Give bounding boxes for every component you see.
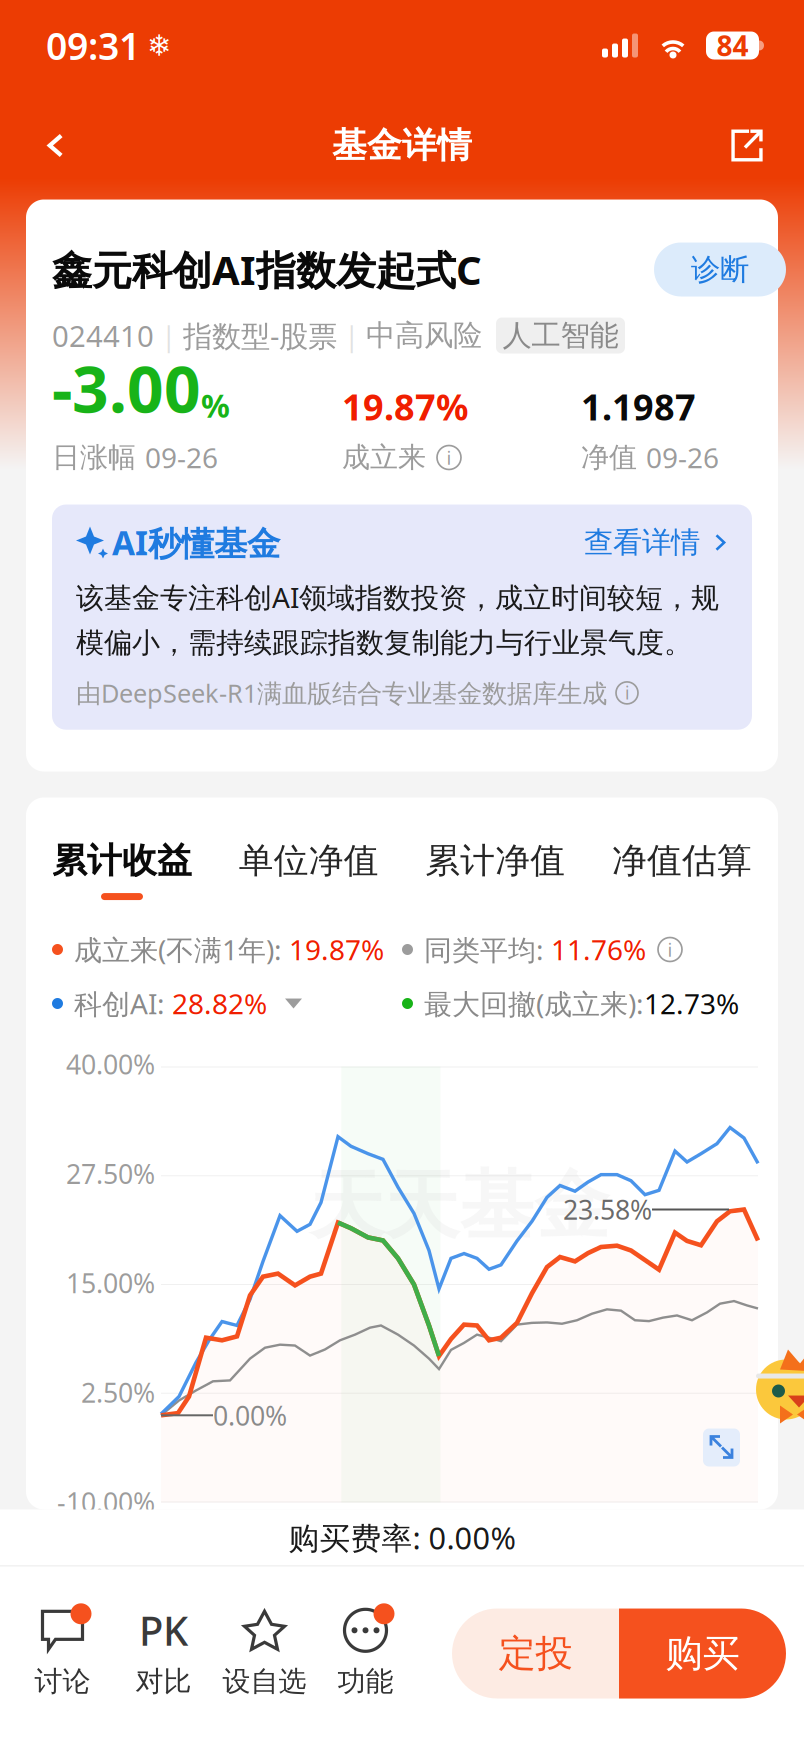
staticText: 23.58% bbox=[563, 1192, 652, 1227]
staticText: 购买费率: 0.00% bbox=[288, 1517, 515, 1558]
button[interactable]: 分享 bbox=[694, 110, 764, 180]
button[interactable]: 净值估算 bbox=[612, 839, 752, 895]
staticText: 净值 bbox=[581, 440, 637, 475]
staticText: 鑫元科创AI指数发起式C bbox=[52, 243, 482, 296]
staticText: 功能 bbox=[337, 1664, 393, 1699]
button[interactable]: 功能 bbox=[315, 1597, 416, 1709]
staticText: 由DeepSeek-R1满血版结合专业基金数据库生成 bbox=[76, 676, 607, 710]
staticText: AI秒懂基金 bbox=[112, 520, 280, 565]
button[interactable]: 购买 bbox=[619, 1608, 786, 1698]
staticText: 定投 bbox=[498, 1631, 572, 1676]
staticText: 11.76% bbox=[551, 931, 646, 968]
staticText: 人工智能 bbox=[502, 317, 618, 353]
button[interactable]: 讨论 bbox=[12, 1597, 113, 1709]
staticText: i bbox=[446, 445, 451, 470]
staticText: 19.87% bbox=[342, 383, 468, 430]
staticText: 查看详情 bbox=[584, 524, 700, 560]
staticText: 40.00% bbox=[66, 1046, 155, 1082]
button[interactable]: PK bbox=[113, 1597, 214, 1709]
button[interactable]: 设自选 bbox=[214, 1597, 315, 1709]
staticText: i bbox=[625, 681, 629, 704]
staticText: 同类平均: bbox=[424, 931, 551, 968]
button[interactable]: 诊断 bbox=[654, 242, 786, 296]
staticText: 024410 bbox=[52, 316, 154, 355]
staticText: 累计净值 bbox=[425, 839, 565, 882]
button[interactable]: 定投 bbox=[452, 1608, 619, 1698]
staticText: 指数型-股票 bbox=[183, 316, 337, 355]
staticText: | bbox=[344, 317, 359, 354]
staticText: 诊断 bbox=[691, 251, 749, 287]
staticText: 购买 bbox=[665, 1631, 739, 1676]
staticText: % bbox=[201, 384, 230, 426]
staticText: PK bbox=[139, 1604, 188, 1657]
staticText: 09:31 bbox=[46, 21, 140, 70]
staticText: 该基金专注科创AI领域指数投资，成立时间较短，规 bbox=[76, 578, 719, 616]
staticText: 84 bbox=[716, 27, 748, 64]
staticText: i bbox=[667, 937, 672, 962]
staticText: 科创AI: bbox=[74, 985, 172, 1022]
staticText: 中高风险 bbox=[366, 317, 482, 353]
staticText: 成立来(不满1年): bbox=[74, 931, 289, 968]
staticText: 28.82% bbox=[172, 985, 267, 1022]
staticText: 09-26 bbox=[145, 439, 218, 476]
staticText: 模偏小，需持续跟踪指数复制能力与行业景气度。 bbox=[76, 626, 692, 660]
staticText: 27.50% bbox=[66, 1156, 155, 1191]
button[interactable]: 全屏 bbox=[703, 1428, 740, 1466]
button[interactable]: 查看详情 bbox=[584, 524, 728, 560]
staticText: 单位净值 bbox=[239, 839, 379, 882]
staticText: | bbox=[161, 317, 176, 354]
staticText: 天天基金 bbox=[309, 1160, 609, 1252]
staticText: 09-26 bbox=[646, 439, 719, 476]
staticText: 净值估算 bbox=[612, 839, 752, 882]
button[interactable]: 单位净值 bbox=[239, 839, 379, 895]
button[interactable]: 累计收益 bbox=[52, 839, 192, 895]
staticText: 1.1987 bbox=[581, 383, 696, 430]
staticText: -10.00% bbox=[57, 1484, 155, 1519]
button[interactable]: 返回 bbox=[44, 110, 114, 180]
staticText: 设自选 bbox=[222, 1664, 306, 1699]
staticText: 15.00% bbox=[66, 1265, 155, 1301]
staticText: 基金详情 bbox=[332, 124, 472, 167]
staticText: 0.00% bbox=[213, 1398, 287, 1433]
staticText: 成立来 bbox=[342, 440, 426, 475]
staticText: 12.73% bbox=[644, 985, 739, 1022]
staticText: 2.50% bbox=[81, 1375, 155, 1410]
staticText: 日涨幅 bbox=[52, 440, 136, 475]
button[interactable]: 累计净值 bbox=[425, 839, 565, 895]
staticText: 19.87% bbox=[289, 931, 384, 968]
staticText: 讨论 bbox=[34, 1664, 90, 1699]
staticText: 最大回撤(成立来): bbox=[424, 985, 644, 1022]
staticText: 对比 bbox=[135, 1664, 191, 1699]
staticText: ❄ bbox=[147, 29, 172, 62]
staticText: -3.00 bbox=[52, 345, 201, 430]
staticText: 累计收益 bbox=[52, 839, 192, 882]
